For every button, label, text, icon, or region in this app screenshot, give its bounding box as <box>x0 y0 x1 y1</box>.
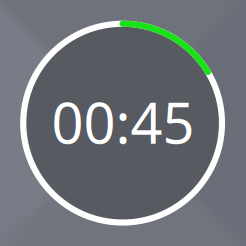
staticText: 00:45 <box>51 85 194 159</box>
button[interactable]: Timer 00:45, pause <box>0 0 246 246</box>
